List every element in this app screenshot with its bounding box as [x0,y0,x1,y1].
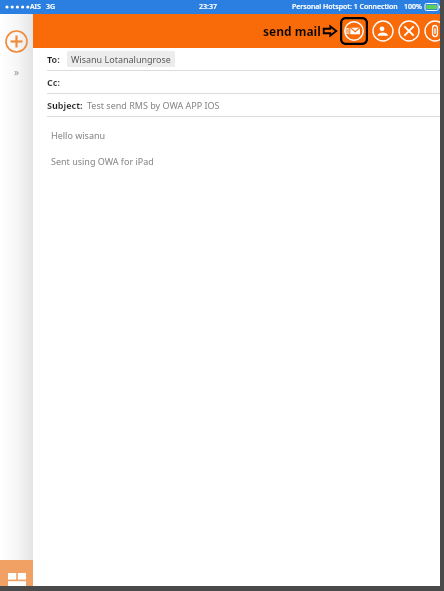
button[interactable]: Expand [9,64,25,80]
staticText: Wisanu Lotanalungrose [71,53,171,65]
staticText: 3G [46,2,56,12]
staticText: Cc: [47,76,60,88]
staticText: Test send RMS by OWA APP IOS [87,99,220,111]
staticText: » [14,65,20,79]
staticText: Personal Hotspot: 1 Connection [292,2,398,12]
button[interactable]: New [5,30,28,53]
staticText: 100% [404,2,422,12]
button[interactable]: Discard [398,20,420,42]
staticText: send mail [263,23,321,39]
staticText: To: [47,53,60,65]
staticText: Subject: [47,99,83,111]
staticText: Hello wisanu [51,129,106,141]
button[interactable]: Apps [0,560,33,591]
button[interactable]: Wisanu Lotanalungrose [71,53,171,65]
button[interactable]: Contacts [372,20,394,42]
staticText: AIS [30,2,41,12]
button[interactable]: Send [340,17,368,45]
button[interactable]: Attach [424,20,444,42]
staticText: 23:37 [199,2,217,12]
staticText: Sent using OWA for iPad [51,155,154,167]
